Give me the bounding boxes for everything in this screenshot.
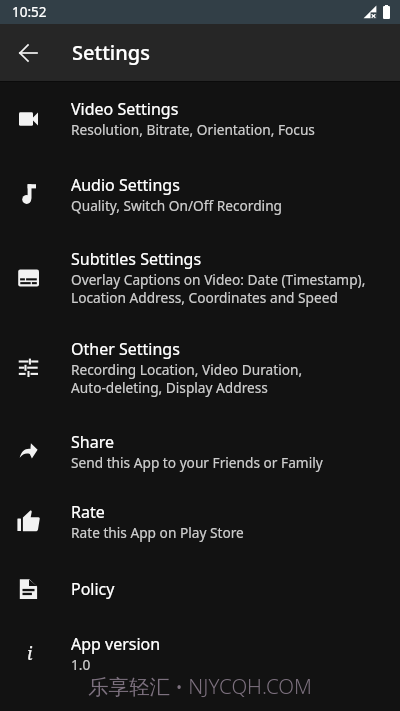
staticText: 1.0 (71, 655, 91, 674)
staticText: Send this App to your Friends or Family (71, 453, 323, 472)
staticText: Rate (71, 501, 105, 523)
button[interactable]: Subtitles Settings (0, 233, 400, 322)
staticText: Rate this App on Play Store (71, 523, 244, 542)
staticText: Overlay Captions on Video: Date (Timesta… (71, 270, 366, 307)
button[interactable]: Audio Settings (0, 155, 400, 233)
staticText: Settings (72, 39, 150, 66)
staticText: i (27, 641, 33, 665)
button[interactable]: Policy (0, 554, 400, 623)
staticText: Quality, Switch On/Off Recording (71, 196, 283, 215)
staticText: Subtitles Settings (71, 248, 202, 270)
staticText: Policy (71, 578, 115, 600)
staticText: App version (71, 633, 161, 655)
button[interactable]: Back (10, 35, 46, 71)
button[interactable]: Share (0, 413, 400, 489)
staticText: 10:52 (12, 3, 47, 21)
staticText: Share (71, 431, 114, 453)
staticText: Other Settings (71, 338, 180, 360)
staticText: 乐享轻汇 • NJYCQH.COM (88, 672, 312, 700)
button[interactable]: Other Settings (0, 322, 400, 413)
staticText: Recording Location, Video Duration, Auto… (71, 360, 303, 397)
button[interactable]: Rate (0, 489, 400, 554)
staticText: Video Settings (71, 98, 179, 120)
button[interactable]: i (0, 623, 400, 683)
button[interactable]: Video Settings (0, 82, 400, 155)
staticText: Audio Settings (71, 174, 180, 196)
staticText: Resolution, Bitrate, Orientation, Focus (71, 120, 315, 139)
